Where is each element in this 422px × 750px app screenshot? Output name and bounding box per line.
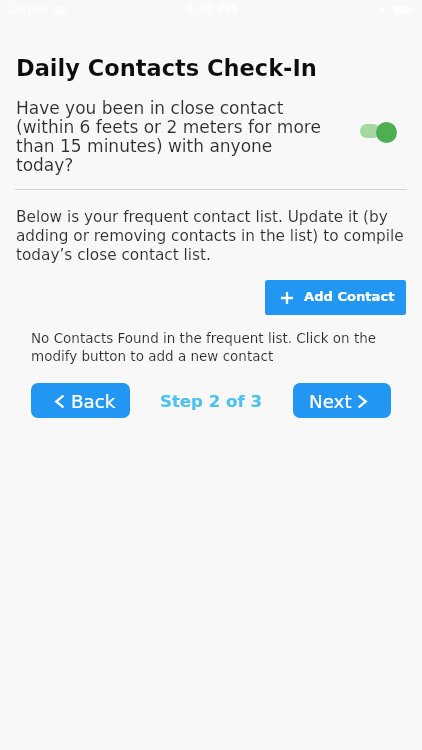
staticText: Have you been in close contact (within 6… — [16, 98, 329, 175]
staticText: Daily Contacts Check-In — [16, 55, 317, 81]
staticText: Add Contact — [304, 289, 395, 304]
button[interactable]: Next — [293, 383, 391, 418]
staticText: Back — [71, 391, 116, 412]
button[interactable]: Add Contact — [265, 280, 406, 315]
staticText: No Contacts Found in the frequent list. … — [31, 330, 379, 364]
staticText: Below is your frequent contact list. Upd… — [16, 208, 410, 264]
staticText: Step 2 of 3 — [0, 392, 422, 411]
staticText: Next — [309, 391, 352, 412]
button[interactable]: Close contact toggle — [354, 116, 400, 146]
button[interactable]: Back — [31, 383, 130, 418]
